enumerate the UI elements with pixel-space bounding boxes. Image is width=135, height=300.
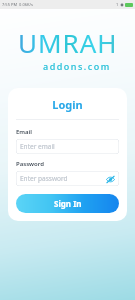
staticText: UMRAH <box>18 25 118 60</box>
staticText: Email <box>16 128 33 136</box>
staticText: Enter password <box>20 174 105 183</box>
staticText: Enter email <box>20 142 115 151</box>
staticText: Sign In <box>54 198 82 209</box>
staticText: 1 <box>116 2 119 7</box>
staticText: 7:55 PM 0.06K/s <box>2 2 33 7</box>
staticText: Login <box>16 97 119 112</box>
button[interactable]: Enter email <box>16 139 119 154</box>
button[interactable]: Sign In <box>16 194 119 213</box>
staticText: Password <box>16 160 45 168</box>
staticText: addons.com <box>43 60 111 72</box>
button[interactable]: Show password <box>105 174 115 184</box>
button[interactable]: Enter password <box>16 171 119 186</box>
